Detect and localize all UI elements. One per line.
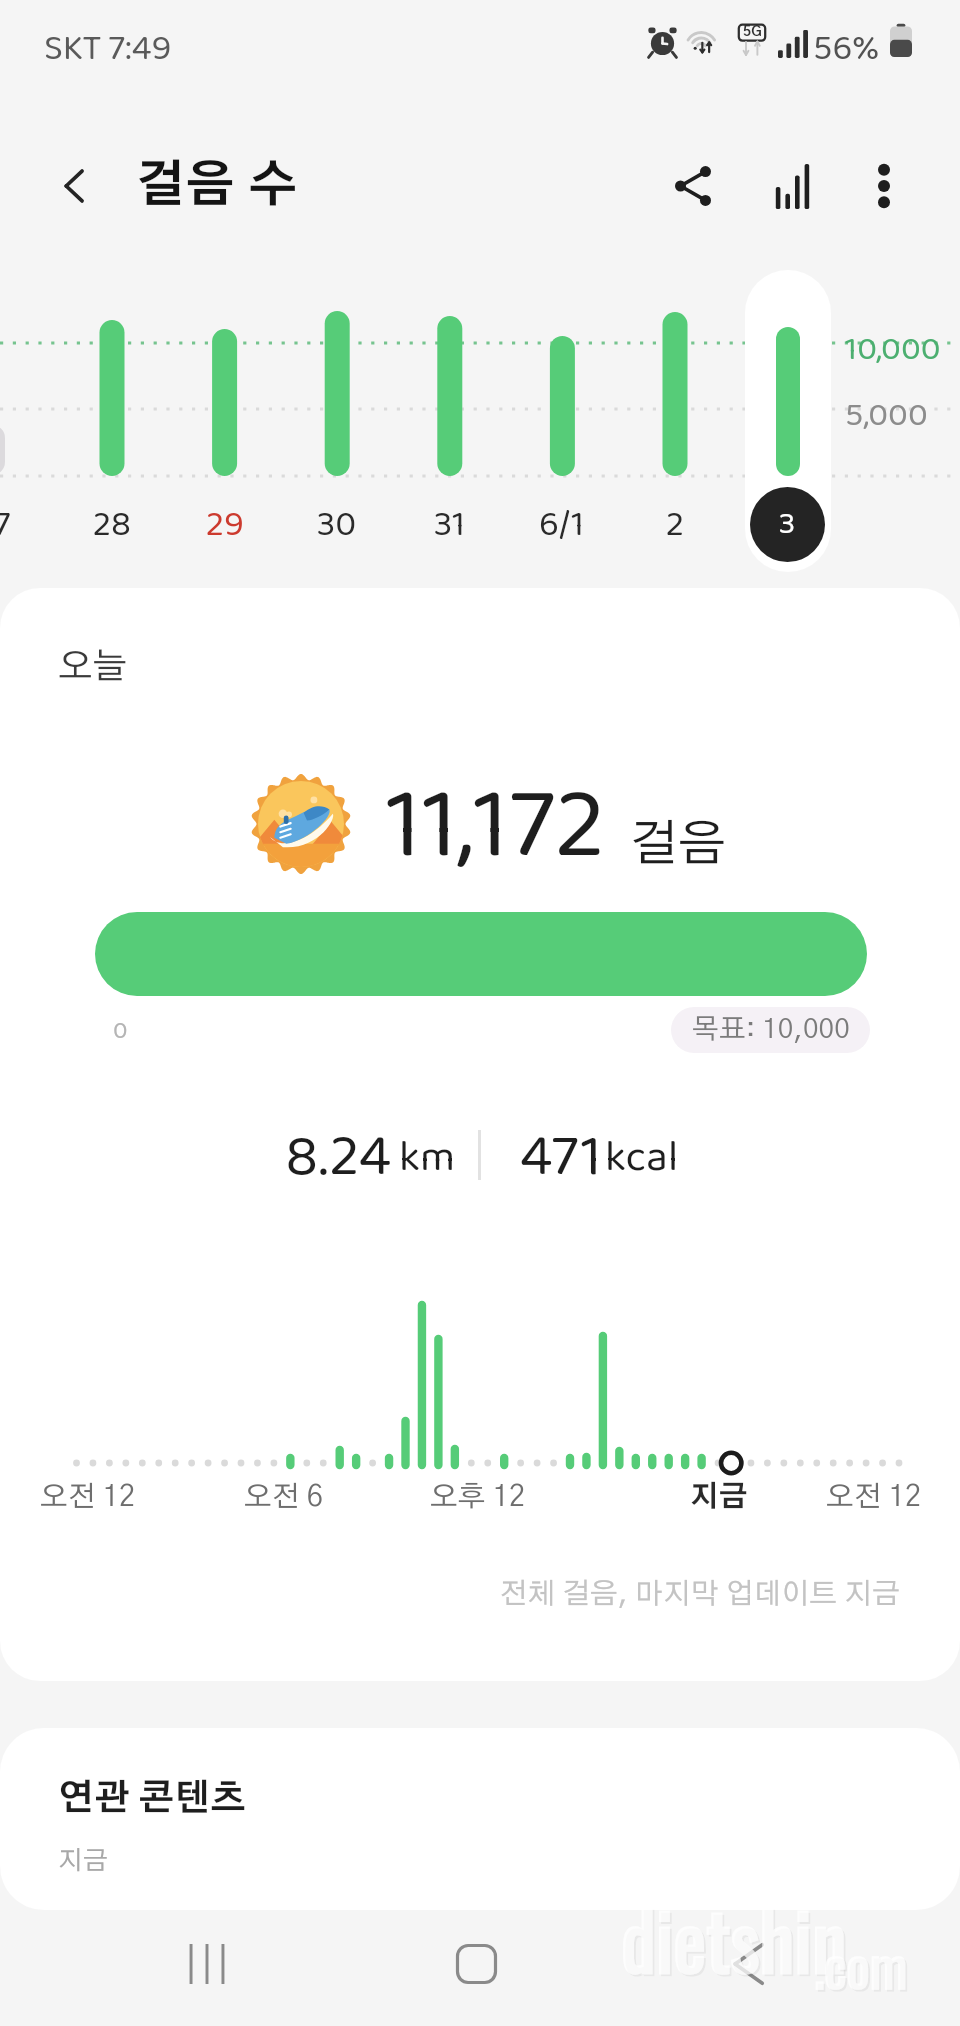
staticText: 8.24: [285, 1110, 391, 1205]
staticText: 11,172: [386, 747, 606, 907]
staticText: 10,000: [845, 322, 941, 376]
staticText: 오늘: [58, 649, 128, 685]
staticText: 28: [93, 496, 132, 554]
staticText: 30: [317, 496, 357, 554]
button[interactable]: Recents: [147, 1906, 267, 2022]
button[interactable]: Chart: [750, 143, 836, 229]
staticText: km: [399, 1124, 456, 1193]
staticText: 연관 콘텐츠: [58, 1781, 247, 1817]
staticText: .com: [816, 1925, 910, 2007]
staticText: 5,000: [845, 388, 928, 442]
staticText: 7: [0, 496, 11, 554]
staticText: 지금: [690, 1483, 748, 1512]
button[interactable]: [745, 270, 831, 572]
staticText: dietshin: [623, 1882, 849, 1998]
staticText: 56%: [813, 20, 880, 78]
button[interactable]: Share: [650, 143, 736, 229]
button[interactable]: Home: [416, 1906, 536, 2022]
button[interactable]: Back: [40, 151, 110, 221]
staticText: dietshin: [621, 1880, 847, 1996]
staticText: 0: [113, 1011, 128, 1051]
staticText: 걸음 수: [136, 162, 299, 211]
button[interactable]: Back: [688, 1906, 808, 2022]
staticText: 오전 6: [244, 1483, 323, 1512]
staticText: 471: [520, 1110, 602, 1205]
staticText: kcal: [605, 1124, 679, 1193]
staticText: 전체 걸음, 마지막 업데이트 지금: [0, 1580, 900, 1609]
staticText: .com: [814, 1923, 908, 2005]
staticText: SKT 7:49: [44, 20, 172, 78]
staticText: 29: [206, 496, 244, 554]
staticText: 걸음: [630, 820, 727, 870]
staticText: 5G: [743, 25, 762, 39]
button[interactable]: 연관 콘텐츠: [0, 1728, 960, 1910]
staticText: 오전 12: [826, 1483, 922, 1512]
staticText: 오전 12: [40, 1483, 136, 1512]
button[interactable]: More options: [841, 143, 927, 229]
staticText: 6/1: [539, 496, 585, 554]
staticText: 31: [434, 496, 466, 554]
staticText: 오후 12: [430, 1483, 526, 1512]
staticText: 3: [779, 499, 796, 550]
staticText: 지금: [58, 1848, 108, 1874]
staticText: 2: [666, 496, 685, 554]
staticText: 목표: 10,000: [692, 1016, 850, 1044]
